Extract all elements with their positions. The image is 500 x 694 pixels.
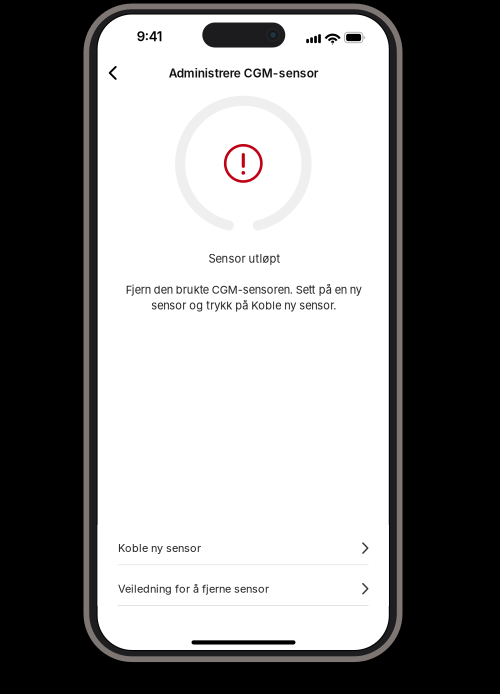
staticText: Fjern den brukte CGM-sensoren. Sett på e… — [126, 283, 362, 312]
staticText: Administrere CGM-sensor — [169, 66, 319, 80]
staticText: Veiledning for å fjerne sensor — [118, 582, 269, 595]
button[interactable]: Back — [101, 54, 139, 92]
staticText: 9:41 — [137, 28, 163, 44]
button[interactable]: Koble ny sensor — [98, 525, 389, 565]
button[interactable]: Veiledning for å fjerne sensor — [98, 565, 389, 606]
staticText: Koble ny sensor — [118, 541, 201, 555]
staticText: Sensor utløpt — [208, 252, 280, 266]
